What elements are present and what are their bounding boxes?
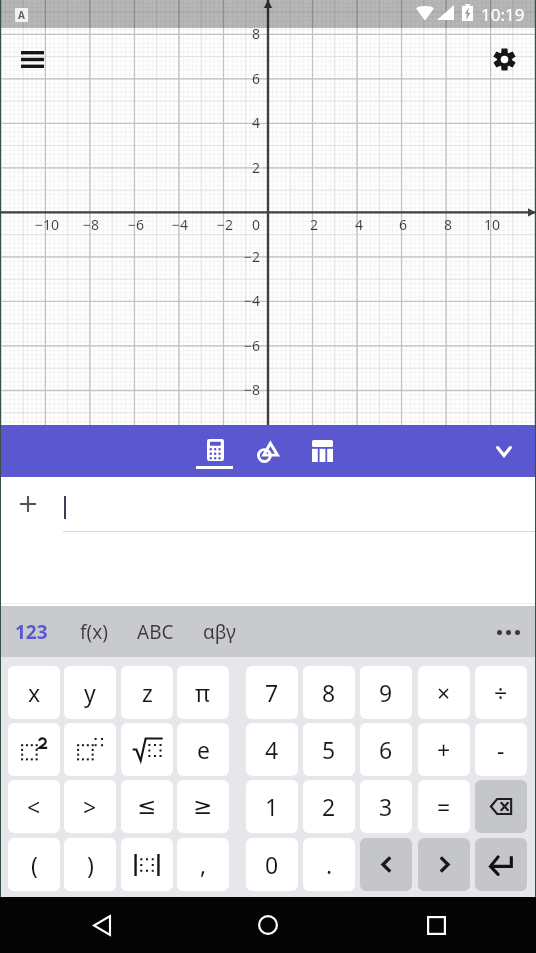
staticText: 10 — [476, 215, 508, 234]
staticText: 123 — [15, 619, 48, 645]
staticText: , — [200, 849, 207, 880]
button[interactable]: ABC — [129, 609, 182, 655]
button[interactable] — [8, 723, 60, 776]
staticText: 0 — [228, 215, 260, 234]
button[interactable]: More options — [486, 610, 530, 654]
staticText: f(x) — [80, 619, 108, 645]
staticText: 4 — [343, 215, 375, 234]
button[interactable]: . — [303, 838, 355, 891]
button[interactable]: 7 — [246, 666, 298, 719]
button[interactable]: > — [64, 780, 116, 833]
staticText: −2 — [228, 247, 260, 266]
staticText: z — [142, 677, 153, 708]
staticText: x — [28, 677, 41, 708]
button[interactable] — [121, 838, 173, 891]
button[interactable]: 4 — [246, 723, 298, 776]
staticText: 2 — [228, 158, 260, 177]
button[interactable]: ≥ — [177, 780, 229, 833]
staticText: 5 — [322, 734, 336, 765]
button[interactable]: < — [8, 780, 60, 833]
button[interactable]: αβγ — [195, 609, 244, 655]
button[interactable]: × — [418, 666, 470, 719]
staticText: 2 — [322, 791, 336, 822]
button[interactable]: Recent apps — [408, 897, 464, 953]
button[interactable]: e — [177, 723, 229, 776]
button[interactable]: 1 — [246, 780, 298, 833]
staticText: ) — [87, 849, 94, 880]
button[interactable]: x — [8, 666, 60, 719]
button[interactable]: z — [121, 666, 173, 719]
button[interactable]: ) — [64, 838, 116, 891]
staticText: 6 — [228, 69, 260, 88]
button[interactable] — [475, 838, 527, 891]
staticText: −8 — [228, 380, 260, 399]
button[interactable]: Settings — [480, 35, 528, 83]
button[interactable] — [418, 838, 470, 891]
staticText: × — [437, 677, 451, 708]
staticText: 6 — [379, 734, 393, 765]
button[interactable]: ÷ — [475, 666, 527, 719]
button[interactable]: π — [177, 666, 229, 719]
button[interactable]: ≤ — [121, 780, 173, 833]
staticText: 10:19 — [481, 3, 525, 26]
staticText: −2 — [209, 215, 241, 234]
button[interactable]: Add expression — [2, 479, 54, 530]
button[interactable] — [64, 723, 116, 776]
button[interactable]: f(x) — [72, 609, 116, 655]
button[interactable]: ( — [8, 838, 60, 891]
staticText: 4 — [265, 734, 279, 765]
staticText: ÷ — [494, 677, 508, 708]
staticText: 2 — [298, 215, 330, 234]
staticText: 6 — [387, 215, 419, 234]
button[interactable]: Home — [240, 897, 296, 953]
button[interactable]: = — [418, 780, 470, 833]
button[interactable] — [475, 780, 527, 833]
staticText: . — [326, 849, 333, 880]
staticText: −6 — [228, 336, 260, 355]
staticText: 1 — [265, 791, 279, 822]
staticText: 3 — [379, 791, 393, 822]
staticText: 0 — [265, 849, 279, 880]
button[interactable] — [360, 838, 412, 891]
staticText: ≤ — [137, 793, 157, 820]
staticText: e — [197, 734, 210, 765]
staticText: > — [83, 791, 97, 822]
staticText: - — [497, 734, 505, 765]
staticText: + — [437, 734, 451, 765]
staticText: −4 — [164, 215, 196, 234]
button[interactable]: Calculator — [189, 425, 241, 477]
staticText: π — [195, 677, 211, 708]
button[interactable]: Menu — [8, 35, 56, 83]
button[interactable]: 9 — [360, 666, 412, 719]
button[interactable]: Back — [74, 897, 130, 953]
button[interactable]: Tools — [241, 425, 293, 477]
staticText: −4 — [228, 291, 260, 310]
staticText: −10 — [31, 215, 63, 234]
staticText: ABC — [137, 619, 174, 645]
button[interactable]: 6 — [360, 723, 412, 776]
button[interactable]: 8 — [303, 666, 355, 719]
button[interactable] — [121, 723, 173, 776]
staticText: A — [18, 8, 25, 22]
button[interactable]: 123 — [7, 609, 56, 655]
staticText: αβγ — [203, 619, 236, 645]
button[interactable]: 3 — [360, 780, 412, 833]
button[interactable]: Collapse keyboard — [480, 427, 528, 475]
button[interactable]: y — [64, 666, 116, 719]
button[interactable]: 2 — [303, 780, 355, 833]
staticText: 8 — [228, 24, 260, 43]
staticText: = — [437, 791, 451, 822]
button[interactable]: 5 — [303, 723, 355, 776]
staticText: 4 — [228, 113, 260, 132]
staticText: 9 — [379, 677, 393, 708]
staticText: y — [84, 677, 96, 708]
staticText: −6 — [120, 215, 152, 234]
staticText: −8 — [75, 215, 107, 234]
button[interactable]: 0 — [246, 838, 298, 891]
staticText: 8 — [432, 215, 464, 234]
button[interactable]: Table — [295, 425, 347, 477]
button[interactable]: , — [177, 838, 229, 891]
button[interactable]: - — [475, 723, 527, 776]
staticText: ( — [31, 849, 38, 880]
button[interactable]: + — [418, 723, 470, 776]
